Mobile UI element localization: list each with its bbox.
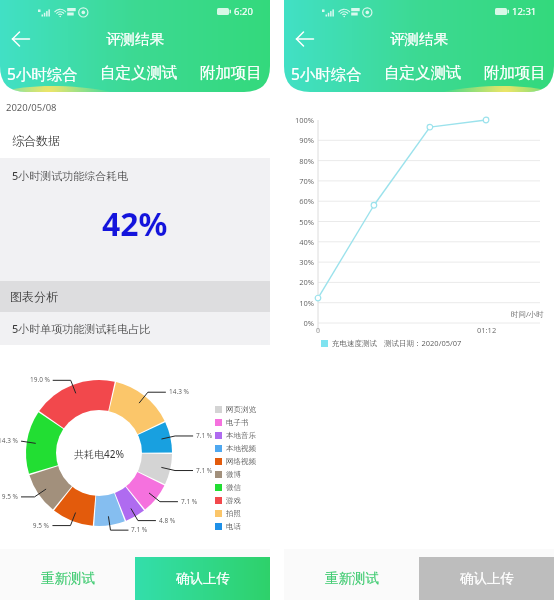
staticText: 重新测试: [325, 570, 379, 587]
staticText: 70%: [284, 176, 314, 186]
staticText: 40%: [284, 237, 314, 247]
staticText: 10%: [284, 298, 314, 308]
staticText: 游戏: [226, 496, 241, 505]
staticText: 9.5 %: [0, 492, 18, 501]
staticText: 5小时单项功能测试耗电占比: [12, 321, 151, 336]
staticText: 80%: [284, 156, 314, 166]
staticText: 重新测试: [41, 570, 95, 587]
button[interactable]: 确认上传: [135, 557, 270, 600]
staticText: 01:12: [477, 325, 497, 335]
staticText: 图表分析: [10, 289, 58, 304]
button[interactable]: Back: [290, 26, 320, 52]
staticText: 本地音乐: [226, 431, 256, 440]
staticText: 4.8 %: [159, 516, 189, 525]
staticText: 本地视频: [226, 444, 256, 453]
staticText: 确认上传: [176, 570, 230, 587]
staticText: 5小时测试功能综合耗电: [12, 168, 129, 183]
staticText: 7.1 %: [181, 497, 211, 506]
staticText: 30%: [284, 257, 314, 267]
staticText: 微信: [226, 483, 241, 492]
staticText: 7.1 %: [196, 466, 226, 475]
staticText: 5小时综合: [7, 63, 78, 84]
staticText: 0%: [284, 318, 314, 328]
staticText: 90%: [284, 135, 314, 145]
staticText: 微博: [226, 470, 241, 479]
button[interactable]: 自定义测试: [384, 63, 462, 83]
staticText: 2020/05/08: [6, 101, 57, 114]
staticText: 12:31: [512, 5, 537, 18]
staticText: 42%: [102, 202, 168, 246]
staticText: 60%: [284, 196, 314, 206]
button[interactable]: 确认上传: [419, 557, 554, 600]
staticText: 网络视频: [226, 457, 256, 466]
staticText: 时间/小时: [511, 309, 544, 319]
staticText: 网页浏览: [226, 405, 256, 414]
staticText: 19.0 %: [20, 375, 50, 384]
staticText: 0: [316, 326, 321, 336]
button[interactable]: 5小时综合: [7, 63, 78, 84]
staticText: 7.1 %: [131, 525, 161, 534]
staticText: 9.5 %: [19, 521, 49, 530]
staticText: 测试日期：2020/05/07: [384, 338, 462, 348]
staticText: 100%: [284, 115, 314, 125]
button[interactable]: 附加项目: [484, 63, 546, 83]
staticText: 7.1 %: [196, 431, 226, 440]
staticText: 共耗电42%: [59, 447, 139, 461]
staticText: 14.3 %: [169, 387, 199, 396]
staticText: 确认上传: [460, 570, 514, 587]
button[interactable]: 自定义测试: [100, 63, 178, 83]
staticText: 综合数据: [12, 133, 60, 148]
button[interactable]: 附加项目: [200, 63, 262, 83]
staticText: 附加项目: [484, 63, 546, 83]
staticText: 拍照: [226, 509, 241, 518]
staticText: 附加项目: [200, 63, 262, 83]
staticText: 电话: [226, 522, 241, 531]
button[interactable]: Back: [6, 26, 36, 52]
button[interactable]: 5小时综合: [291, 63, 362, 84]
button[interactable]: 重新测试: [0, 549, 135, 600]
staticText: 电子书: [226, 418, 249, 427]
staticText: 自定义测试: [384, 63, 462, 83]
staticText: 14.3 %: [0, 436, 18, 445]
staticText: 20%: [284, 277, 314, 287]
staticText: 评测结果: [106, 30, 164, 48]
staticText: 充电速度测试: [332, 339, 377, 348]
staticText: 评测结果: [390, 30, 448, 48]
staticText: 5小时综合: [291, 63, 362, 84]
staticText: 50%: [284, 217, 314, 227]
staticText: 6:20: [234, 5, 253, 18]
button[interactable]: 重新测试: [284, 549, 419, 600]
staticText: 自定义测试: [100, 63, 178, 83]
